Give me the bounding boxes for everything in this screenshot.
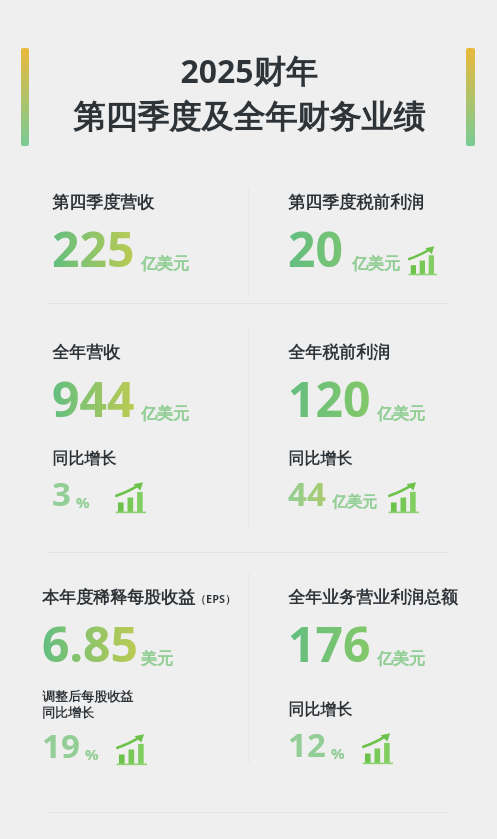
staticText: 全年业务营业利润总额 [288, 587, 458, 608]
staticText: 176 [288, 611, 371, 676]
button[interactable]: 第四季度税前利润 [249, 180, 497, 281]
button[interactable]: 全年税前利润 [249, 304, 497, 516]
staticText: 2025财年 [180, 49, 318, 93]
staticText: 美元 [141, 649, 173, 669]
staticText: 第四季度及全年财务业绩 [73, 97, 425, 137]
staticText: 亿美元 [377, 404, 425, 424]
staticText: 3 [52, 471, 71, 516]
staticText: 亿美元 [377, 649, 425, 669]
staticText: 同比增长 [288, 700, 352, 720]
button[interactable]: 全年营收 [0, 304, 248, 516]
staticText: 亿美元 [352, 254, 400, 274]
button[interactable]: 本年度稀释每股收益 [0, 553, 248, 768]
other: Growth chart [387, 482, 420, 515]
other: Growth chart [361, 733, 394, 766]
staticText: % [331, 743, 345, 763]
staticText: 亿美元 [141, 254, 189, 274]
staticText: 19 [42, 723, 80, 768]
other: Growth chart [407, 246, 438, 277]
staticText: % [85, 744, 99, 764]
staticText: 本年度稀释每股收益 [42, 587, 195, 608]
staticText: 同比增长 [288, 449, 352, 469]
staticText: 亿美元 [332, 493, 377, 512]
staticText: （EPS） [195, 591, 237, 606]
staticText: 120 [288, 366, 371, 431]
button[interactable]: 全年业务营业利润总额 [249, 553, 497, 767]
other: Growth chart [115, 734, 148, 767]
staticText: 调整后每股收益 [42, 688, 133, 704]
staticText: 全年营收 [52, 342, 120, 363]
staticText: 944 [52, 366, 135, 431]
staticText: 12 [288, 722, 326, 767]
staticText: % [76, 492, 90, 512]
staticText: 225 [52, 216, 135, 281]
staticText: 全年税前利润 [288, 342, 390, 363]
staticText: 20 [288, 216, 343, 281]
staticText: 第四季度营收 [52, 192, 154, 213]
staticText: 同比增长 [52, 449, 116, 469]
staticText: 亿美元 [141, 404, 189, 424]
button[interactable]: 第四季度营收 [0, 180, 248, 281]
staticText: 同比增长 [42, 704, 94, 720]
staticText: 第四季度税前利润 [288, 192, 424, 213]
staticText: 6.85 [42, 611, 138, 676]
other: Growth chart [114, 482, 147, 515]
staticText: 44 [288, 471, 326, 516]
